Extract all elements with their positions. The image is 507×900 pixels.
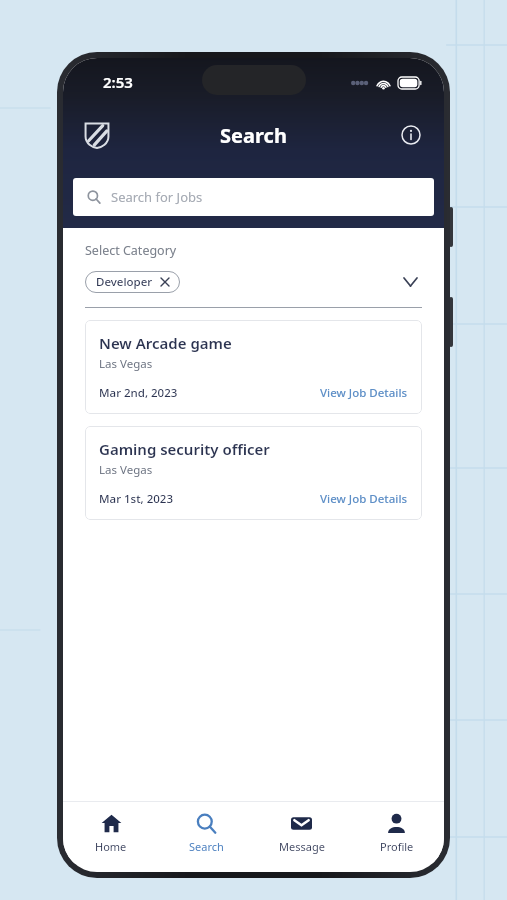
button[interactable]: App logo bbox=[79, 117, 115, 153]
button[interactable]: Search bbox=[159, 802, 254, 864]
staticText: Search for Jobs bbox=[111, 188, 203, 206]
staticText: Las Vegas bbox=[99, 356, 153, 372]
staticText: Home bbox=[95, 839, 127, 854]
button[interactable]: View Job Details bbox=[320, 385, 408, 401]
button[interactable]: Developer bbox=[85, 271, 180, 293]
staticText: Mar 2nd, 2023 bbox=[99, 385, 178, 401]
staticText: Message bbox=[279, 839, 325, 854]
staticText: New Arcade game bbox=[99, 333, 232, 353]
button[interactable]: New Arcade game bbox=[85, 320, 422, 414]
button[interactable]: Profile bbox=[349, 802, 444, 864]
staticText: Las Vegas bbox=[99, 462, 153, 478]
button[interactable]: Expand category list bbox=[398, 270, 422, 294]
button[interactable]: Information bbox=[394, 118, 428, 152]
staticText: Mar 1st, 2023 bbox=[99, 491, 174, 507]
staticText: View Job Details bbox=[320, 491, 408, 507]
staticText: Profile bbox=[380, 839, 414, 854]
staticText: Search bbox=[189, 839, 224, 854]
button[interactable]: Home bbox=[63, 802, 159, 864]
staticText: 2:53 bbox=[103, 72, 133, 92]
button[interactable]: Gaming security officer bbox=[85, 426, 422, 520]
staticText: Select Category bbox=[85, 242, 177, 259]
button[interactable]: View Job Details bbox=[320, 491, 408, 507]
staticText: Search bbox=[220, 122, 287, 149]
staticText: Developer bbox=[96, 274, 153, 290]
staticText: Gaming security officer bbox=[99, 439, 270, 459]
button[interactable]: Message bbox=[254, 802, 349, 864]
button[interactable]: Search for Jobs bbox=[73, 178, 434, 216]
staticText: View Job Details bbox=[320, 385, 408, 401]
